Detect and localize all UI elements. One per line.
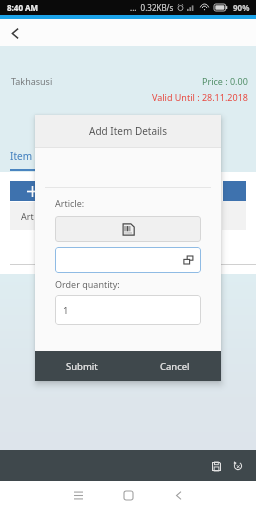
button[interactable]: Reset: [227, 455, 249, 477]
staticText: Article:: [55, 197, 85, 209]
staticText: Order quantity:: [55, 278, 120, 290]
button[interactable]: Save: [205, 455, 227, 477]
button[interactable]: [55, 247, 201, 273]
staticText: ... 0.32KB/s: [130, 2, 174, 13]
button[interactable]: 1: [55, 295, 201, 325]
staticText: Cancel: [160, 360, 190, 373]
button[interactable]: Add: [10, 181, 54, 201]
staticText: Takhasusi: [11, 75, 53, 87]
staticText: Price : 0.00: [202, 75, 248, 87]
staticText: 90%: [233, 2, 250, 13]
button[interactable]: Back: [2, 20, 28, 46]
button[interactable]: Cancel: [128, 351, 221, 381]
button[interactable]: Scan barcode: [55, 216, 201, 242]
staticText: Valid Until : 28.11.2018: [152, 91, 248, 103]
staticText: 8:40 AM: [7, 2, 39, 13]
button[interactable]: Back: [164, 481, 192, 509]
staticText: Item C: [10, 149, 41, 163]
button[interactable]: Recent apps: [64, 481, 92, 509]
button[interactable]: Home: [114, 481, 142, 509]
button[interactable]: Item C: [8, 142, 56, 172]
button[interactable]: Submit: [35, 351, 128, 381]
staticText: Art: [21, 210, 34, 222]
staticText: Submit: [66, 360, 98, 373]
staticText: 1: [63, 304, 69, 317]
staticText: Add Item Details: [89, 124, 167, 138]
